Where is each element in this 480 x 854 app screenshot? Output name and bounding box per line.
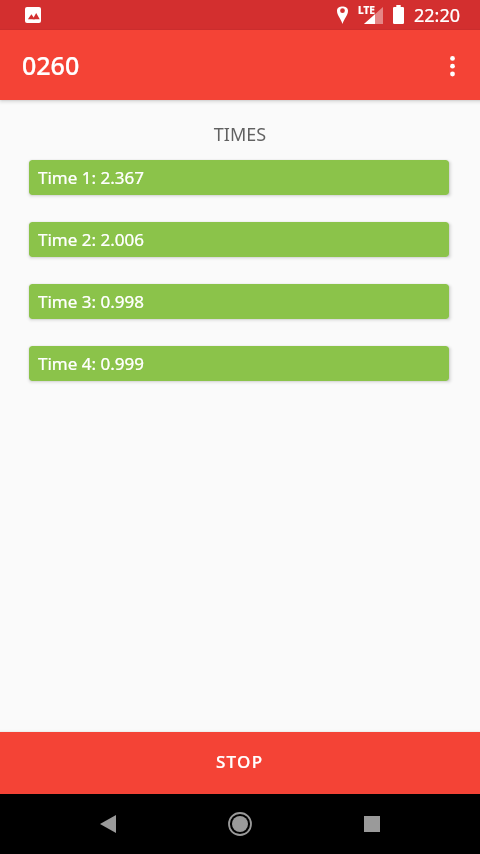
staticText: LTE (358, 3, 375, 17)
button[interactable]: Back (84, 800, 132, 848)
button[interactable]: More options (428, 41, 476, 89)
staticText: Time 4: 0.999 (38, 352, 144, 375)
staticText: STOP (216, 750, 264, 773)
staticText: TIMES (0, 122, 480, 147)
button[interactable]: Recents (348, 800, 396, 848)
staticText: 0260 (22, 48, 80, 82)
button[interactable]: Time 4: 0.999 (29, 346, 449, 381)
staticText: Time 3: 0.998 (38, 290, 144, 313)
button[interactable]: Time 1: 2.367 (29, 160, 449, 195)
staticText: 22:20 (414, 3, 461, 28)
button[interactable]: Time 3: 0.998 (29, 284, 449, 319)
staticText: Time 2: 2.006 (38, 228, 144, 251)
button[interactable]: Time 2: 2.006 (29, 222, 449, 257)
button[interactable]: STOP (0, 732, 480, 794)
staticText: Time 1: 2.367 (38, 166, 144, 189)
button[interactable]: Home (216, 800, 264, 848)
